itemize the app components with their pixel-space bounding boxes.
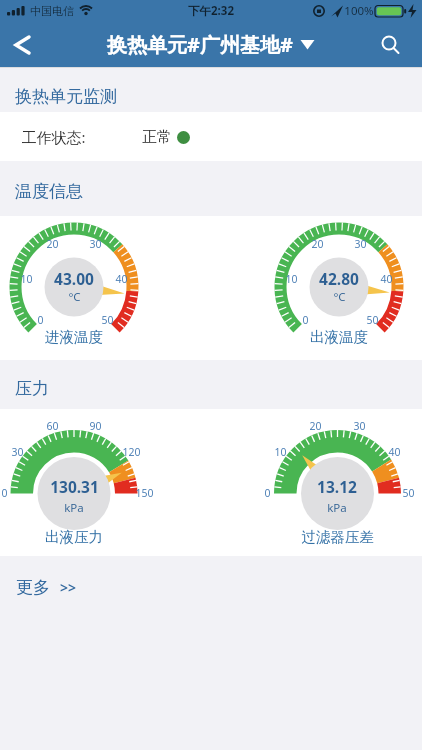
staticText: 50	[402, 486, 415, 500]
staticText: 更多	[16, 577, 50, 598]
staticText: 13.12	[317, 476, 357, 496]
button[interactable]: 更多	[16, 577, 77, 598]
staticText: 90	[89, 419, 102, 433]
staticText: 0	[37, 313, 44, 327]
staticText: 130.31	[50, 476, 99, 496]
staticText: 10	[285, 272, 298, 286]
staticText: 30	[353, 419, 366, 433]
staticText: 换热单元监测	[15, 86, 117, 107]
staticText: 温度信息	[15, 181, 83, 202]
staticText: 30	[89, 237, 102, 251]
staticText: kPa	[64, 500, 84, 516]
staticText: 进液温度	[45, 328, 103, 346]
staticText: 50	[101, 313, 114, 327]
staticText: 60	[46, 419, 59, 433]
staticText: 0	[264, 486, 271, 500]
staticText: 10	[274, 445, 287, 459]
staticText: 30	[11, 445, 24, 459]
staticText: 40	[115, 272, 128, 286]
staticText: °C	[68, 289, 81, 305]
staticText: 工作状态:	[21, 127, 86, 147]
staticText: 压力	[15, 378, 49, 399]
staticText: 120	[122, 445, 141, 459]
staticText: 40	[388, 445, 401, 459]
staticText: 20	[309, 419, 322, 433]
staticText: 40	[380, 272, 393, 286]
staticText: 43.00	[54, 268, 94, 288]
staticText: 过滤器压差	[301, 528, 374, 546]
staticText: 中国电信	[30, 4, 74, 18]
staticText: 20	[46, 237, 59, 251]
staticText: >>	[60, 578, 77, 597]
staticText: 0	[302, 313, 309, 327]
staticText: 30	[354, 237, 367, 251]
button[interactable]: 换热单元#广州基地#	[107, 31, 315, 58]
staticText: 正常	[142, 128, 172, 147]
staticText: 10	[20, 272, 33, 286]
staticText: 42.80	[319, 268, 359, 288]
staticText: 换热单元#广州基地#	[107, 31, 293, 58]
button[interactable]	[372, 28, 408, 62]
staticText: 20	[311, 237, 324, 251]
staticText: °C	[333, 289, 346, 305]
staticText: 出液压力	[45, 528, 103, 546]
staticText: 50	[366, 313, 379, 327]
staticText: 出液温度	[310, 328, 368, 346]
staticText: 下午2:32	[188, 3, 234, 19]
staticText: 100%	[344, 3, 374, 19]
staticText: 0	[1, 486, 8, 500]
button[interactable]: 工作状态:	[0, 112, 422, 161]
staticText: 150	[135, 486, 154, 500]
button[interactable]	[4, 28, 40, 62]
staticText: kPa	[327, 500, 347, 516]
